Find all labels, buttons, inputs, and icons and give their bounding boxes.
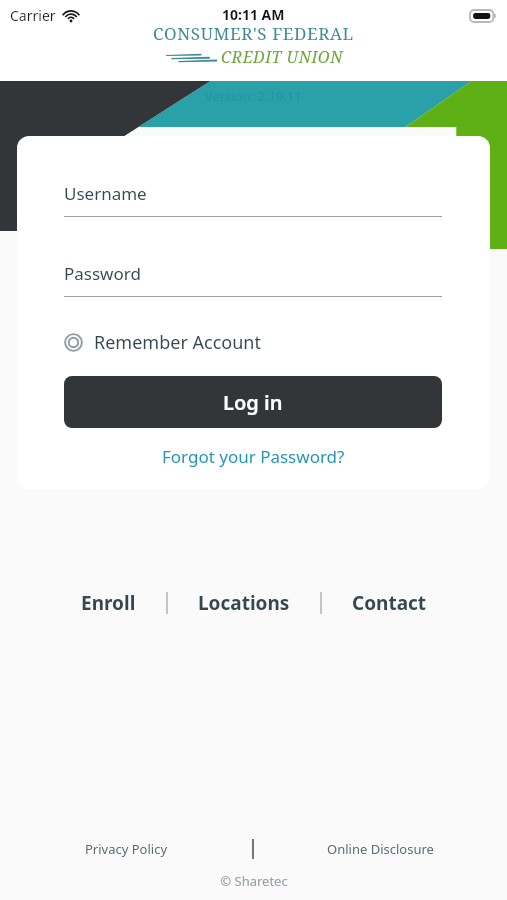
staticText: Enroll <box>81 590 136 616</box>
staticText: Privacy Policy <box>85 840 168 858</box>
button[interactable]: Privacy Policy <box>0 834 252 864</box>
staticText: Carrier <box>10 6 56 25</box>
button[interactable]: Log in <box>64 376 442 428</box>
button[interactable]: Enroll <box>69 584 148 622</box>
button[interactable]: Remember Account <box>61 326 264 359</box>
staticText: Log in <box>223 389 283 416</box>
staticText: CONSUMER'S FEDERAL <box>153 22 354 45</box>
staticText: Forgot your Password? <box>162 445 345 468</box>
button[interactable]: Online Disclosure <box>254 834 507 864</box>
staticText: Online Disclosure <box>327 840 434 858</box>
staticText: Password <box>64 262 141 285</box>
button[interactable]: Forgot your Password? <box>154 441 353 472</box>
staticText: © Sharetec <box>220 872 288 890</box>
staticText: Locations <box>198 590 290 616</box>
staticText: 10:11 AM <box>222 5 285 24</box>
staticText: Version: 2.19.11 <box>205 87 302 105</box>
staticText: Contact <box>352 590 427 616</box>
staticText: CREDIT UNION <box>221 46 343 68</box>
button[interactable]: Locations <box>186 584 302 622</box>
staticText: Username <box>64 182 147 205</box>
staticText: Remember Account <box>94 330 261 355</box>
button[interactable]: Contact <box>340 584 439 622</box>
